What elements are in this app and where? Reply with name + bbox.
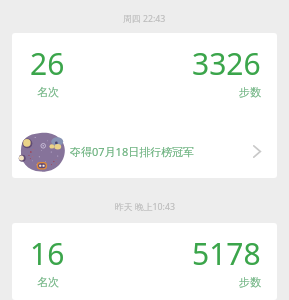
- button[interactable]: 26: [12, 33, 277, 178]
- staticText: 5178: [192, 233, 261, 274]
- staticText: 步数: [239, 275, 261, 289]
- staticText: 16: [30, 233, 65, 274]
- staticText: 3326: [192, 43, 261, 84]
- button[interactable]: 夺得07月18日排行榜冠军: [12, 125, 277, 178]
- staticText: 步数: [239, 85, 261, 99]
- staticText: 夺得07月18日排行榜冠军: [70, 144, 195, 159]
- staticText: 名次: [37, 85, 59, 99]
- staticText: 周四 22:43: [123, 13, 166, 25]
- staticText: 名次: [37, 275, 59, 289]
- other: 查看详情: [253, 145, 261, 158]
- staticText: 昨天 晚上10:43: [115, 201, 175, 213]
- button[interactable]: 16: [12, 223, 277, 300]
- staticText: 26: [30, 43, 65, 84]
